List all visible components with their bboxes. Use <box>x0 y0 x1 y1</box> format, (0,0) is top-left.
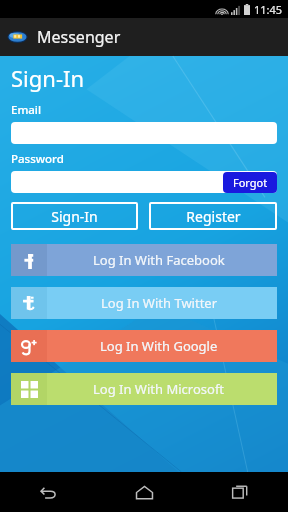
button[interactable]: Home <box>96 472 192 512</box>
staticText: Register <box>186 207 241 226</box>
button[interactable]: Log In With Google <box>11 330 277 362</box>
button[interactable]: Sign-In <box>11 202 138 230</box>
staticText: Sign-In <box>11 63 85 93</box>
button[interactable]: Register <box>149 202 277 230</box>
button[interactable] <box>11 122 277 144</box>
staticText: Log In With Facebook <box>93 251 225 269</box>
staticText: Password <box>11 151 64 167</box>
button[interactable]: Log In With Twitter <box>11 287 277 319</box>
staticText: Log In With Google <box>100 337 218 355</box>
staticText: Sign-In <box>51 207 98 226</box>
staticText: Log In With Twitter <box>101 294 218 312</box>
button[interactable]: Log In With Facebook <box>11 244 277 276</box>
staticText: Messenger <box>37 26 121 48</box>
button[interactable]: Log In With Microsoft <box>11 373 277 405</box>
staticText: 11:45 <box>254 2 283 17</box>
button[interactable]: Forgot <box>223 172 277 193</box>
button[interactable] <box>11 171 277 193</box>
button[interactable]: Recent apps <box>192 472 288 512</box>
staticText: Log In With Microsoft <box>93 380 225 398</box>
staticText: Forgot <box>233 175 268 190</box>
button[interactable]: Back <box>0 472 96 512</box>
staticText: Email <box>11 102 42 118</box>
